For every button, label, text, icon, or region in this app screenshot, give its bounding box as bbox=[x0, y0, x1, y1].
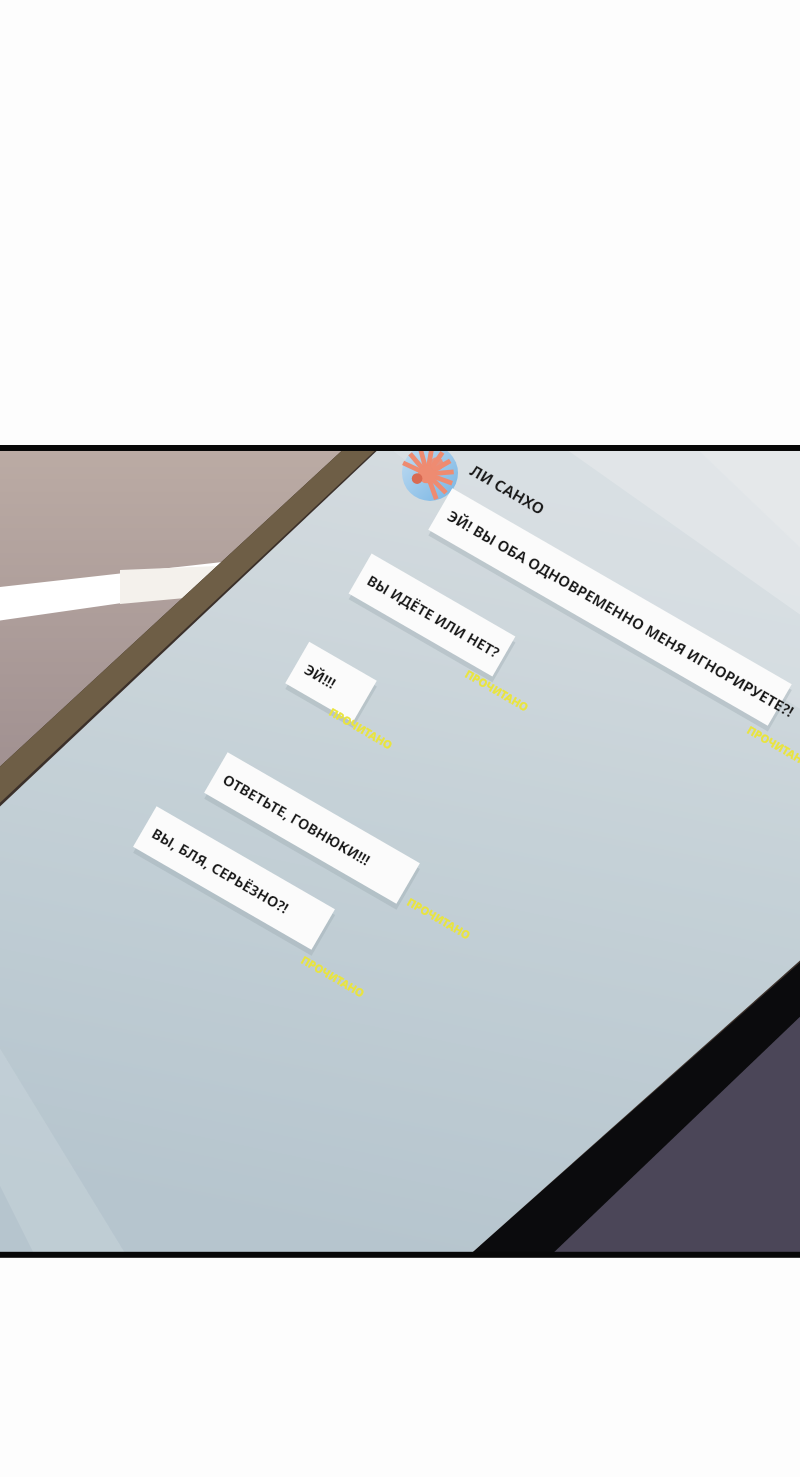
button[interactable]: Comic panel: tilted phone showing a chat bbox=[0, 0, 800, 1477]
